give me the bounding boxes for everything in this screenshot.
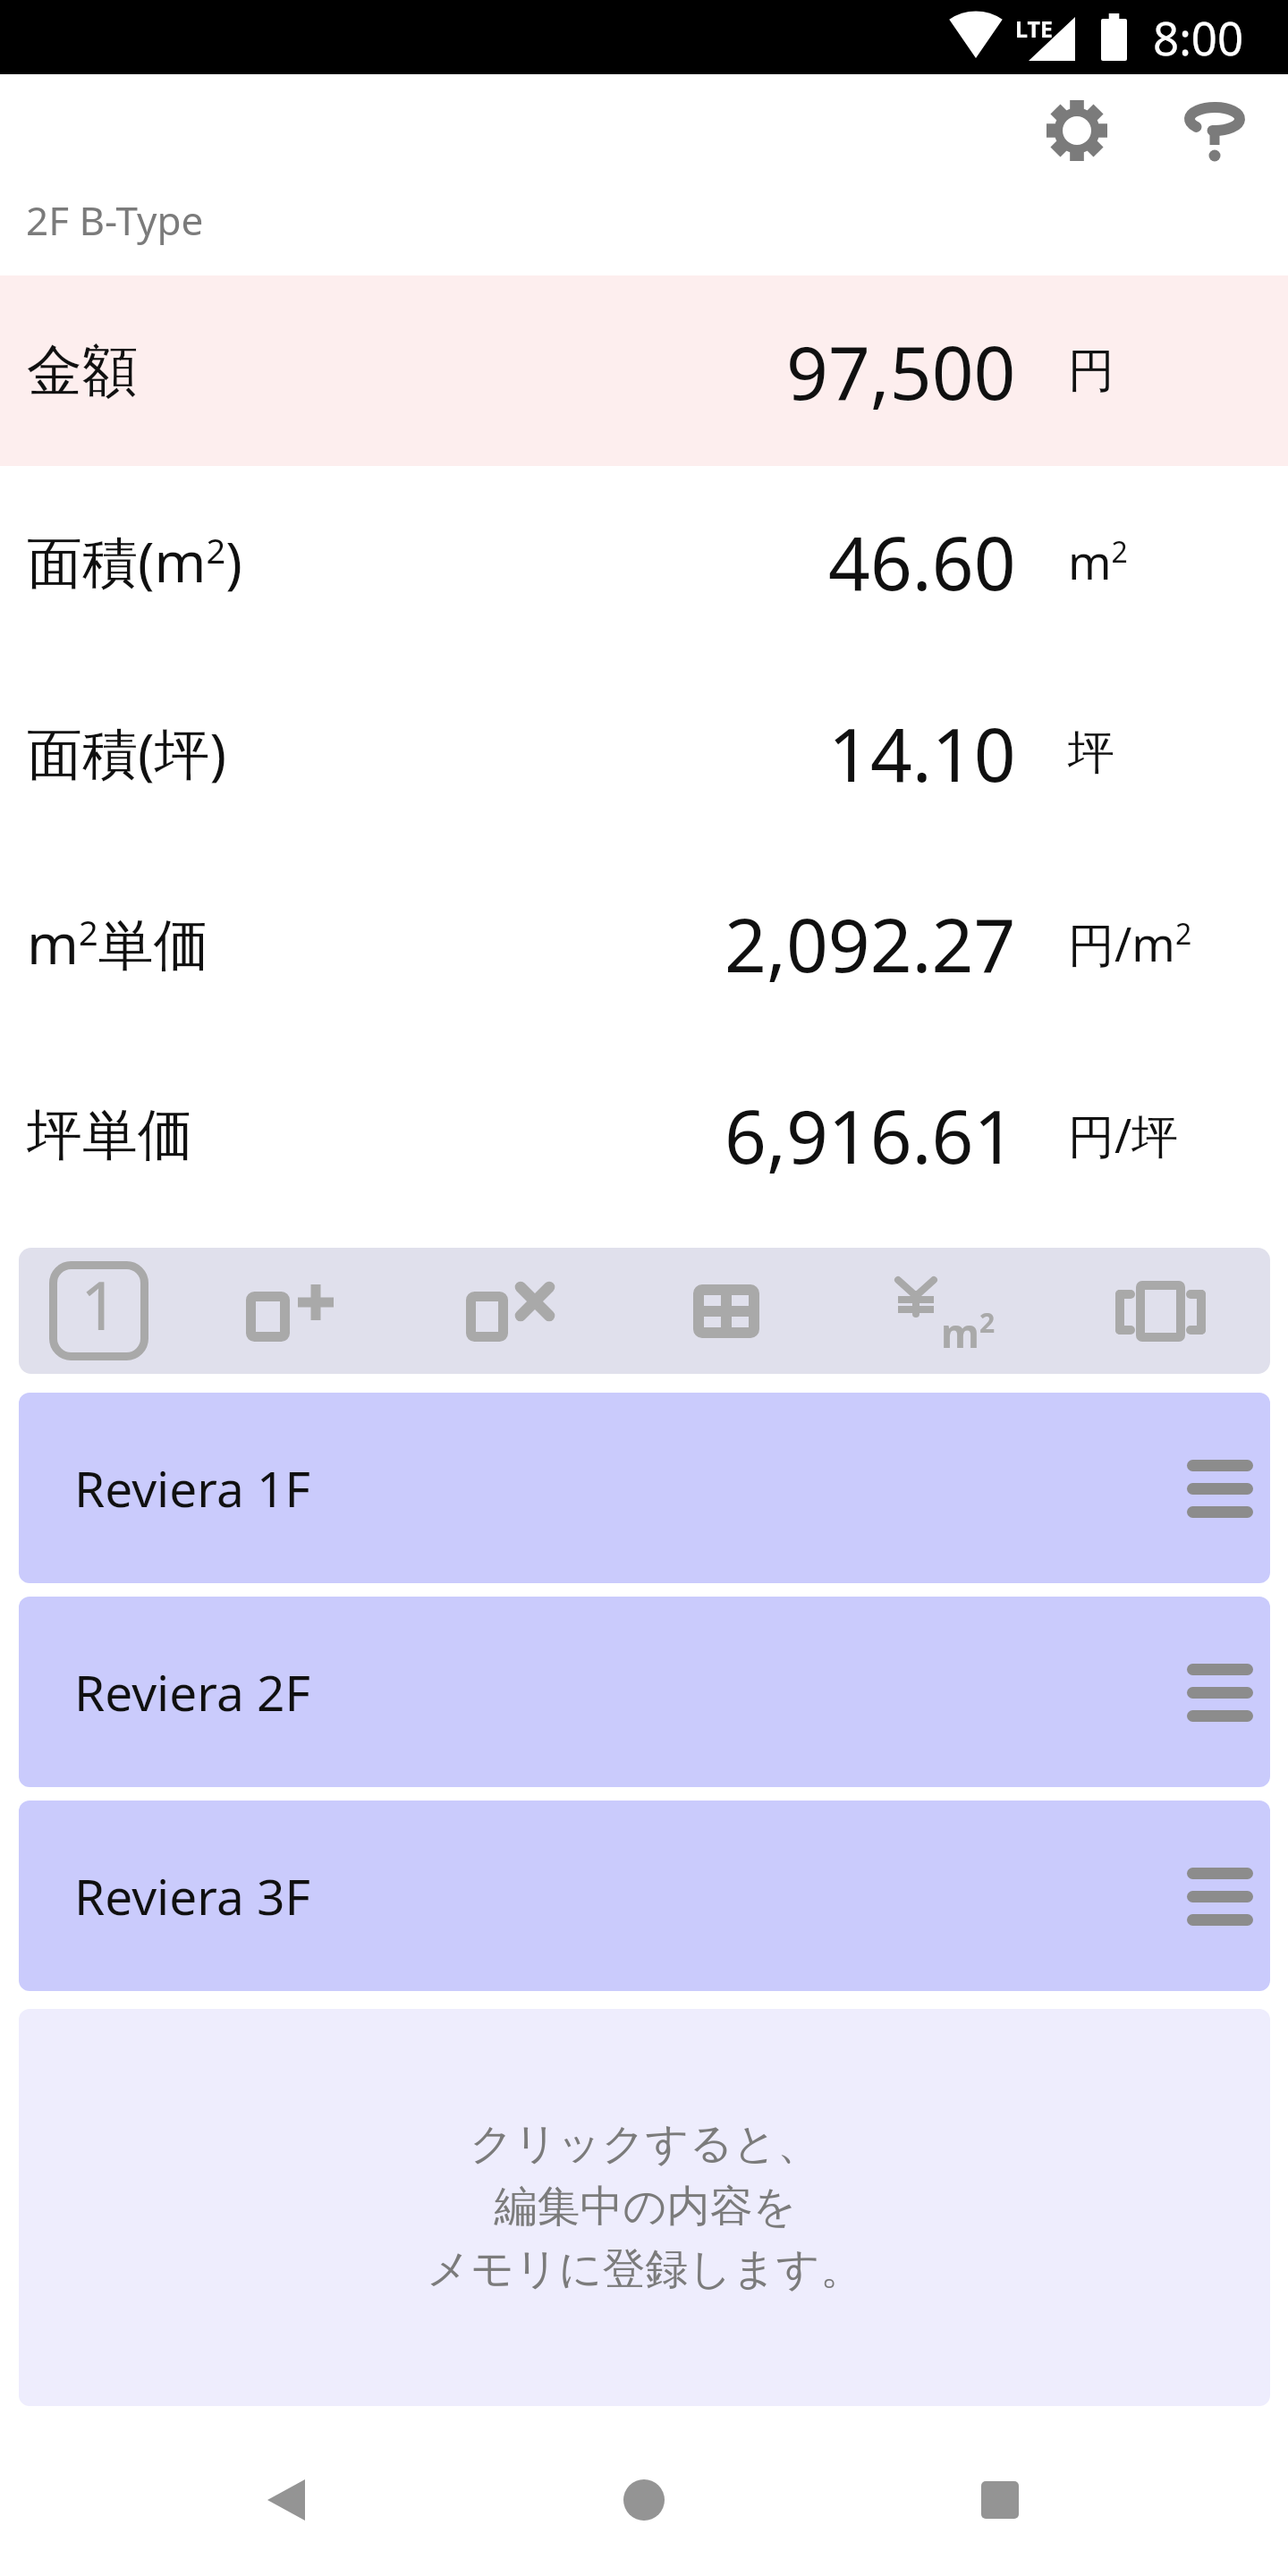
button[interactable]: Reorder Reviera 2F (1169, 1641, 1270, 1743)
staticText: 6,916.61 (724, 1085, 1016, 1185)
staticText: 8:00 (1153, 6, 1244, 68)
staticText: m2 (1068, 530, 1128, 593)
staticText: 面積(m2) (27, 523, 242, 599)
staticText: 2,092.27 (724, 894, 1016, 994)
button[interactable]: Reviera 3F (19, 1801, 1270, 1991)
button[interactable]: 金額 (0, 275, 1288, 466)
staticText: 坪 (1068, 724, 1114, 783)
button[interactable]: Grid (668, 1261, 792, 1360)
button[interactable]: Reviera 1F (19, 1393, 1270, 1583)
button[interactable]: 面積(m2) (0, 466, 1288, 657)
button[interactable]: Settings (1014, 68, 1140, 193)
button[interactable]: Reorder Reviera 3F (1169, 1845, 1270, 1947)
button[interactable]: Recent apps (937, 2437, 1063, 2563)
staticText: 円/坪 (1068, 1103, 1179, 1166)
button[interactable]: Home (581, 2437, 707, 2563)
button[interactable]: 面積(坪) (0, 657, 1288, 848)
button[interactable]: Copy (1097, 1261, 1220, 1360)
button[interactable]: Memory slot 1 (49, 1261, 148, 1360)
button[interactable]: m2単価 (0, 848, 1288, 1038)
staticText: 97,500 (786, 321, 1016, 421)
staticText: Reviera 3F (74, 1862, 311, 1929)
staticText: Reviera 2F (74, 1658, 311, 1725)
staticText: 金額 (27, 336, 138, 406)
button[interactable]: クリックすると、 (19, 2009, 1270, 2406)
button[interactable]: Help (1152, 68, 1277, 193)
button[interactable]: Reorder Reviera 1F (1169, 1437, 1270, 1539)
button[interactable]: Add page (227, 1261, 351, 1360)
button[interactable]: Reviera 2F (19, 1597, 1270, 1787)
button[interactable]: Delete page (447, 1261, 571, 1360)
staticText: クリックすると、 (470, 2117, 820, 2171)
staticText: 14.10 (828, 703, 1016, 803)
staticText: 面積(坪) (27, 715, 227, 791)
staticText: LTE (1015, 13, 1053, 44)
staticText: 編集中の内容を (494, 2180, 797, 2233)
staticText: m2 (941, 1304, 996, 1360)
staticText: メモリに登録します。 (427, 2242, 863, 2296)
staticText: 円 (1068, 342, 1114, 401)
staticText: 2F B-Type (26, 193, 204, 247)
staticText: 1 (80, 1259, 119, 1350)
staticText: Reviera 1F (74, 1454, 311, 1521)
staticText: 坪単価 (27, 1100, 193, 1170)
staticText: m2単価 (27, 905, 209, 981)
button[interactable]: Unit price (876, 1261, 999, 1360)
button[interactable]: Back (224, 2437, 349, 2563)
staticText: 46.60 (828, 512, 1016, 612)
button[interactable]: 坪単価 (0, 1039, 1288, 1230)
staticText: 円/m2 (1068, 911, 1192, 975)
